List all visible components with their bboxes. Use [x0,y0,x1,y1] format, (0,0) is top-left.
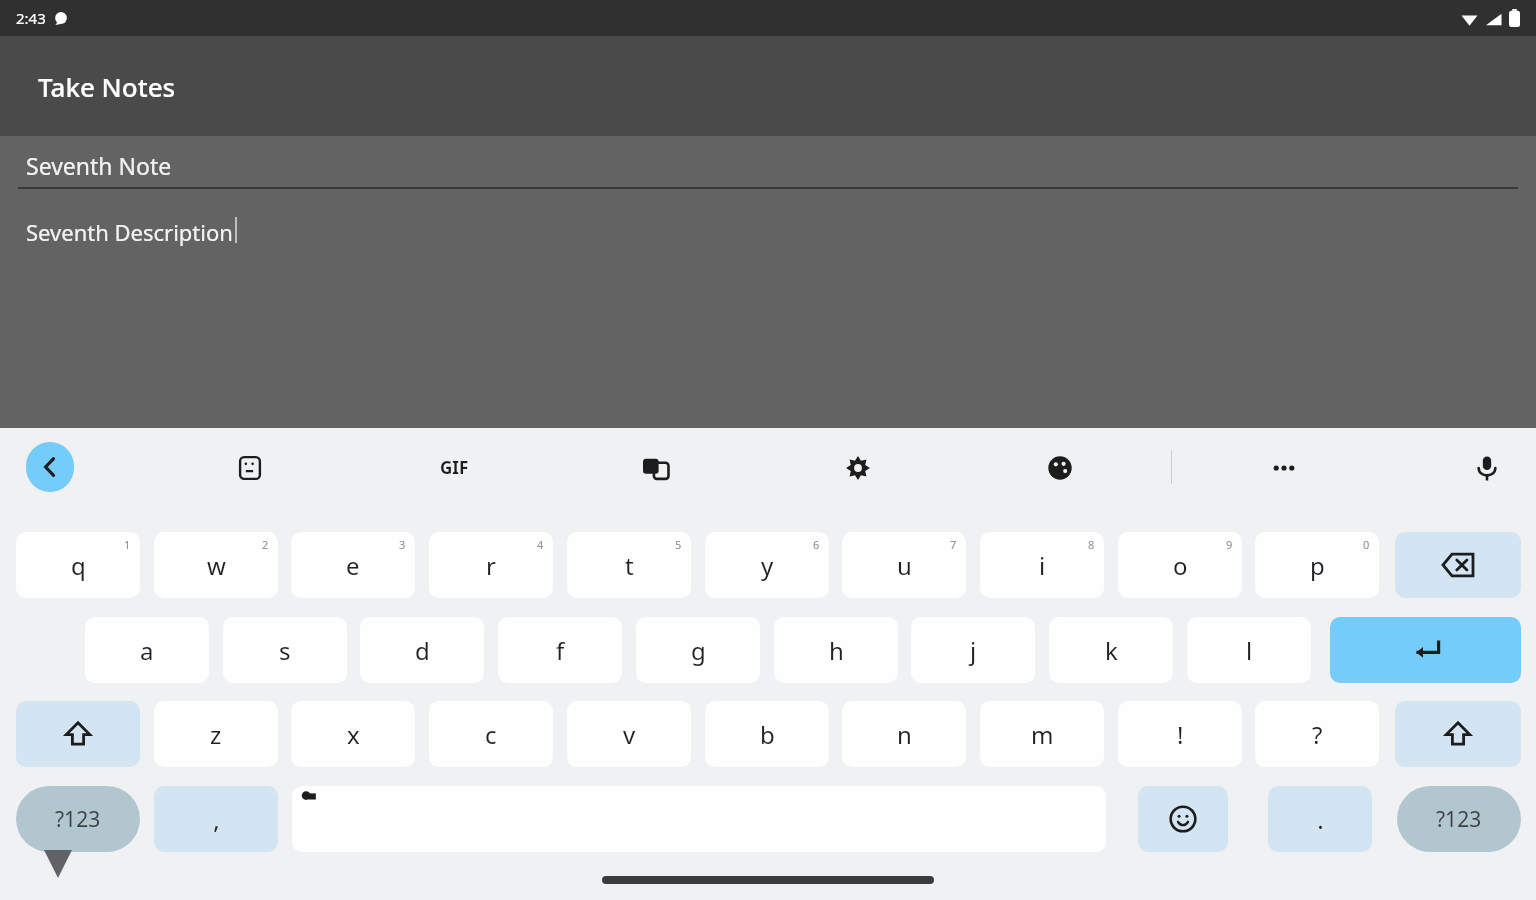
staticText: , [213,803,220,836]
staticText: g [691,634,706,667]
button[interactable]: m [980,701,1104,767]
button[interactable]: g [636,617,760,683]
button[interactable]: Seventh Note [18,150,1518,189]
staticText: 1 [124,537,131,552]
button[interactable]: s [223,617,347,683]
button[interactable]: ?123 [16,786,140,852]
button[interactable]: Translate [630,442,682,494]
staticText: 7 [950,537,957,552]
button[interactable]: ? [1255,701,1379,767]
staticText: ?123 [55,805,101,834]
button[interactable]: p [1255,532,1379,598]
button[interactable]: Enter [1330,617,1521,683]
button[interactable]: , [154,786,278,852]
staticText: s [279,634,291,667]
button[interactable]: Back [26,442,74,492]
button[interactable]: Theme [1034,442,1086,494]
staticText: q [71,549,86,582]
staticText: 6 [813,537,820,552]
button[interactable]: Voice input [1461,442,1513,494]
button[interactable]: c [429,701,553,767]
staticText: 8 [1088,537,1095,552]
staticText: o [1173,549,1188,582]
button[interactable]: n [842,701,966,767]
button[interactable]: . [1268,786,1372,852]
staticText: Seventh Note [26,150,172,181]
staticText: Seventh Description [26,217,233,247]
button[interactable]: e [291,532,415,598]
button[interactable]: Shift [1395,701,1521,767]
staticText: 4 [537,537,544,552]
button[interactable]: f [498,617,622,683]
staticText: r [486,549,496,582]
staticText: 2 [262,537,269,552]
staticText: a [140,634,154,667]
button[interactable]: Emoji [1138,786,1228,852]
staticText: 2:43 [16,8,46,28]
staticText: u [897,549,912,582]
button[interactable]: t [567,532,691,598]
staticText: ?123 [1436,805,1482,834]
button[interactable]: Shift [16,701,140,767]
button[interactable]: k [1049,617,1173,683]
button[interactable]: d [360,617,484,683]
staticText: . [1317,803,1324,836]
button[interactable]: i [980,532,1104,598]
staticText: j [970,634,977,667]
staticText: y [761,549,774,582]
button[interactable]: Backspace [1395,532,1521,598]
staticText: GIF [440,456,469,479]
staticText: f [556,634,565,667]
button[interactable]: l [1187,617,1311,683]
button[interactable]: GIF [426,442,482,492]
staticText: ? [1312,718,1323,751]
button[interactable]: y [705,532,829,598]
staticText: n [897,718,912,751]
staticText: x [347,718,360,751]
staticText: 0 [1363,537,1370,552]
button[interactable]: r [429,532,553,598]
staticText: 5 [675,537,682,552]
staticText: p [1310,549,1325,582]
button[interactable]: Space [292,786,1106,852]
staticText: v [623,718,636,751]
button[interactable]: q [16,532,140,598]
staticText: i [1039,549,1046,582]
button[interactable]: Stickers [224,442,276,494]
staticText: 9 [1226,537,1233,552]
button[interactable]: Settings [832,442,884,494]
staticText: m [1031,718,1054,751]
button[interactable]: x [291,701,415,767]
staticText: h [829,634,844,667]
staticText: ! [1177,718,1184,751]
staticText: b [760,718,775,751]
button[interactable]: o [1118,532,1242,598]
staticText: w [207,549,226,582]
staticText: Take Notes [38,69,176,104]
button[interactable]: Seventh Description [26,217,1510,387]
button[interactable]: b [705,701,829,767]
button[interactable]: ! [1118,701,1242,767]
button[interactable]: a [85,617,209,683]
staticText: z [210,718,222,751]
other: Symbols keyboard [44,850,72,878]
staticText: d [415,634,430,667]
button[interactable]: h [774,617,898,683]
button[interactable]: ?123 [1397,786,1521,852]
staticText: e [346,549,360,582]
button[interactable]: w [154,532,278,598]
staticText: k [1105,634,1118,667]
staticText: t [625,549,634,582]
staticText: l [1246,634,1253,667]
button[interactable]: z [154,701,278,767]
staticText: c [485,718,497,751]
button[interactable]: v [567,701,691,767]
staticText: 3 [399,537,406,552]
button[interactable]: More options [1258,442,1310,494]
button[interactable]: j [911,617,1035,683]
button[interactable]: u [842,532,966,598]
